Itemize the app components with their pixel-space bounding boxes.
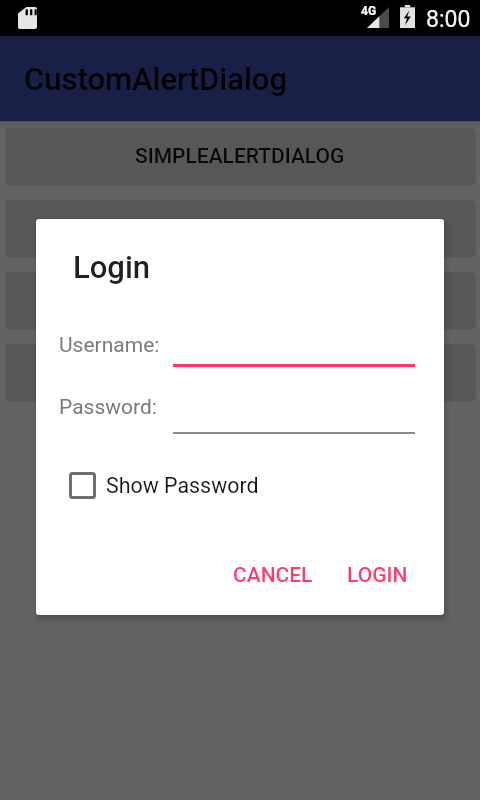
staticText: LOGIN	[347, 563, 408, 588]
other: Dialog option	[6, 344, 474, 400]
button[interactable]: SIMPLEALERTDIALOG	[6, 128, 474, 184]
staticText: 8:00	[426, 6, 471, 33]
other: SD card	[18, 7, 37, 29]
button[interactable]: CANCEL	[224, 555, 322, 596]
staticText: 4G	[361, 4, 377, 18]
button[interactable]: Dialog option	[6, 272, 474, 328]
button[interactable]: Dialog option	[6, 200, 474, 256]
other: Dialog option	[6, 200, 474, 256]
staticText: CustomAlertDialog	[24, 61, 288, 97]
staticText: Show Password	[106, 473, 259, 498]
button[interactable]: Dialog option	[6, 344, 474, 400]
button[interactable]: Show Password	[65, 468, 259, 503]
staticText: CANCEL	[233, 563, 313, 588]
staticText: SIMPLEALERTDIALOG	[135, 144, 345, 169]
staticText: Password:	[59, 395, 157, 420]
other: Dialog option	[6, 272, 474, 328]
staticText: Login	[73, 249, 151, 285]
button[interactable]: LOGIN	[338, 555, 417, 596]
staticText: Username:	[59, 333, 160, 358]
